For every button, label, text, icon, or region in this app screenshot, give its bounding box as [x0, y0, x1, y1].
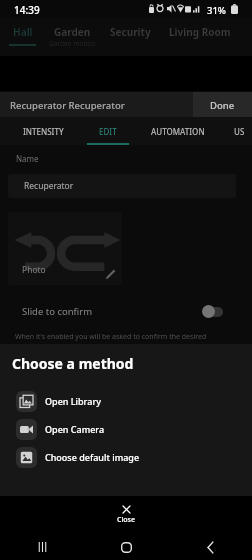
button[interactable]: Photo [8, 212, 122, 285]
button[interactable]: Back [168, 534, 252, 560]
staticText: Garden motion [49, 39, 96, 48]
button[interactable]: AUTOMATION [129, 117, 227, 145]
button[interactable]: Recuperator [8, 174, 236, 198]
staticText: Name [16, 153, 39, 164]
button[interactable]: Garden [45, 18, 99, 56]
button[interactable]: US [227, 117, 252, 145]
button[interactable]: Living Room [161, 18, 239, 56]
staticText: Slide to confirm [22, 305, 93, 318]
staticText: Done [210, 99, 235, 112]
staticText: When it's enabled you will be asked to c… [15, 332, 207, 342]
button[interactable]: Hall [0, 18, 45, 56]
button[interactable]: Recents [0, 534, 84, 560]
staticText: 14:39 [14, 3, 40, 17]
staticText: Open Camera [45, 423, 105, 435]
button[interactable]: EDIT [87, 117, 129, 145]
staticText: Open Library [45, 395, 101, 407]
staticText: 31% [207, 4, 226, 17]
staticText: Recuperator Recuperator [10, 99, 125, 112]
button[interactable]: Choose default image [0, 443, 252, 471]
staticText: Garden [54, 25, 91, 39]
button[interactable]: Security [99, 18, 161, 56]
staticText: Hall [13, 25, 33, 39]
staticText: INTENSITY [23, 126, 64, 137]
staticText: Living Room [169, 25, 231, 39]
button[interactable]: Open Library [0, 387, 252, 415]
staticText: Security [110, 25, 151, 39]
staticText: Close [117, 515, 136, 525]
staticText: Choose default image [45, 451, 140, 463]
staticText: Choose a method [12, 354, 134, 373]
staticText: Photo [22, 264, 46, 276]
staticText: Recuperator [24, 180, 74, 192]
button[interactable]: Close [0, 496, 252, 534]
button[interactable]: Slide to confirm [22, 302, 223, 320]
button[interactable]: Open Camera [0, 415, 252, 443]
staticText: EDIT [99, 126, 117, 137]
button[interactable]: Done [193, 92, 252, 118]
staticText: AUTOMATION [151, 126, 205, 137]
button[interactable]: INTENSITY [0, 117, 87, 145]
staticText: US [234, 126, 245, 137]
button[interactable]: Home [84, 534, 168, 560]
